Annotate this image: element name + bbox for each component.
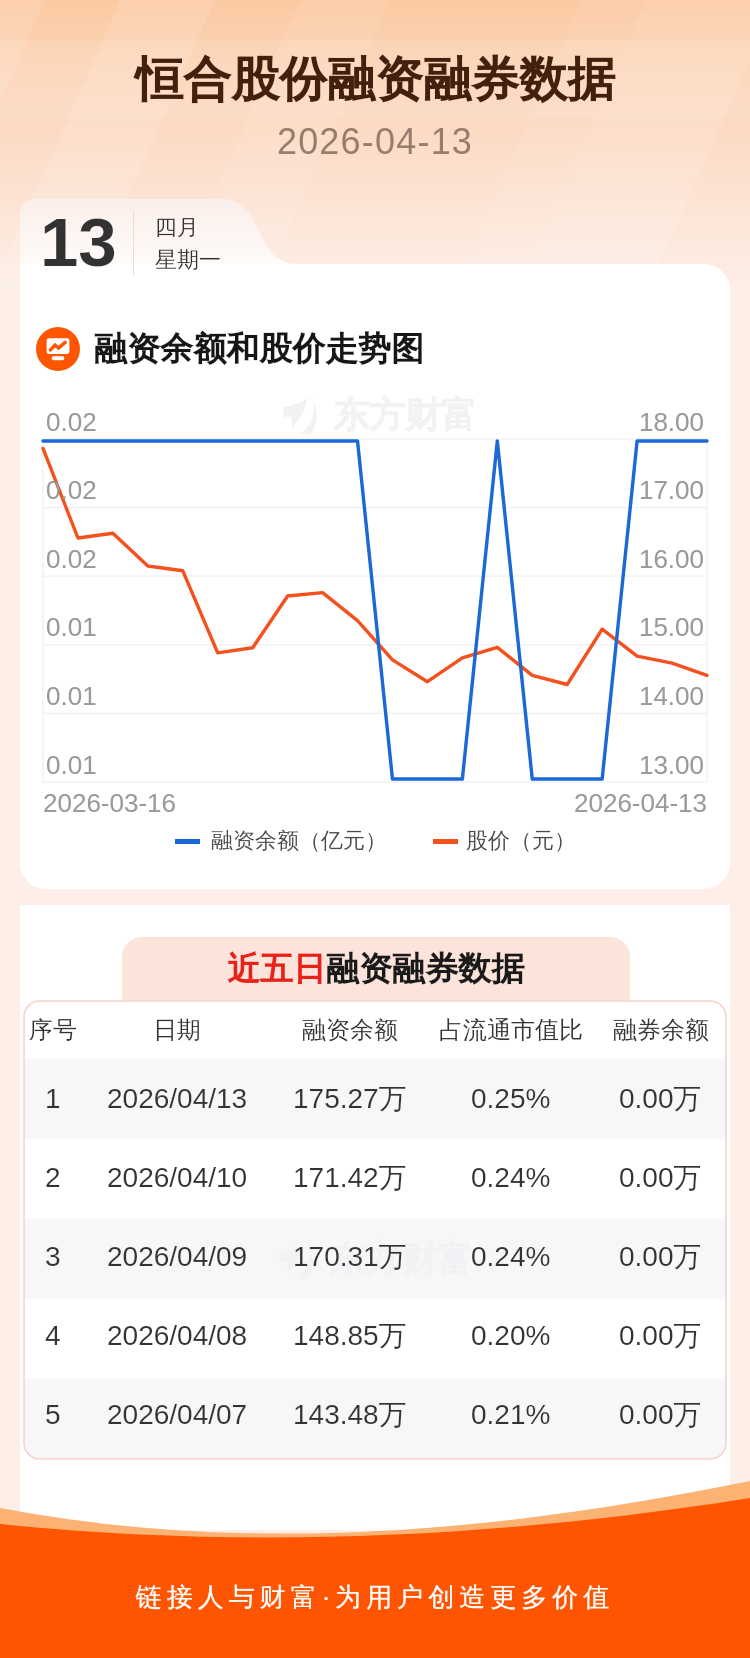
staticText: 链接人与财富·为用户创造更多价值 — [0, 1581, 750, 1614]
staticText: 0.00万 — [619, 1397, 702, 1432]
staticText: 5 — [45, 1399, 61, 1430]
staticText: 股价（元） — [466, 827, 576, 855]
staticText: 171.42万 — [293, 1160, 407, 1195]
staticText: 0.24% — [471, 1162, 551, 1193]
staticText: 融资余额 — [302, 1015, 398, 1045]
staticText: 0.24% — [471, 1241, 551, 1272]
staticText: 2026/04/10 — [107, 1162, 248, 1193]
staticText: 17.00 — [520, 475, 704, 504]
staticText: 东方财富 — [329, 1237, 473, 1282]
staticText: 1 — [45, 1083, 61, 1114]
staticText: 170.31万 — [293, 1239, 407, 1274]
staticText: 0.00万 — [619, 1081, 702, 1116]
button[interactable]: 4 — [24, 1296, 726, 1375]
staticText: 日期 — [153, 1015, 201, 1045]
staticText: 融券余额 — [613, 1015, 709, 1045]
staticText: 2026-03-16 — [43, 788, 176, 817]
staticText: 2026-04-13 — [520, 788, 707, 817]
button[interactable]: 5 — [24, 1375, 726, 1454]
staticText: 15.00 — [520, 612, 704, 641]
staticText: 0.01 — [46, 750, 97, 779]
other: Chart icon — [36, 327, 80, 371]
staticText: 148.85万 — [293, 1318, 407, 1353]
staticText: 13.00 — [520, 750, 704, 779]
staticText: 4 — [45, 1320, 61, 1351]
staticText: 0.02 — [46, 544, 97, 573]
staticText: 星期一 — [155, 246, 221, 274]
staticText: 融资余额和股价走势图 — [94, 328, 424, 370]
button[interactable]: 1 — [24, 1059, 726, 1138]
staticText: 18.00 — [520, 407, 704, 436]
staticText: 2026/04/13 — [107, 1083, 248, 1114]
staticText: 0.01 — [46, 681, 97, 710]
staticText: 0.02 — [46, 475, 97, 504]
staticText: 0.01 — [46, 612, 97, 641]
staticText: 143.48万 — [293, 1397, 407, 1432]
staticText: 近五日 — [227, 948, 326, 990]
staticText: 0.20% — [471, 1320, 551, 1351]
staticText: 融资融券数据 — [326, 948, 524, 990]
staticText: 序号 — [29, 1015, 77, 1045]
staticText: 东方财富 — [333, 392, 477, 437]
staticText: 0.00万 — [619, 1318, 702, 1353]
staticText: 0.02 — [46, 407, 97, 436]
button[interactable]: Chart icon — [36, 327, 424, 371]
staticText: 13 — [40, 204, 117, 281]
staticText: 16.00 — [520, 544, 704, 573]
staticText: 0.25% — [471, 1083, 551, 1114]
button[interactable]: 2 — [24, 1138, 726, 1217]
staticText: 14.00 — [520, 681, 704, 710]
staticText: 0.00万 — [619, 1239, 702, 1274]
staticText: 占流通市值比 — [439, 1015, 583, 1045]
staticText: 2026-04-13 — [0, 121, 750, 161]
staticText: 3 — [45, 1241, 61, 1272]
staticText: 175.27万 — [293, 1081, 407, 1116]
staticText: 恒合股份融资融券数据 — [0, 50, 750, 110]
staticText: 2 — [45, 1162, 61, 1193]
staticText: 2026/04/08 — [107, 1320, 248, 1351]
staticText: 融资余额（亿元） — [211, 827, 387, 855]
button[interactable]: 3 — [24, 1217, 726, 1296]
staticText: 2026/04/09 — [107, 1241, 248, 1272]
staticText: 0.21% — [471, 1399, 551, 1430]
staticText: 四月 — [155, 214, 199, 242]
staticText: 2026/04/07 — [107, 1399, 248, 1430]
staticText: 0.00万 — [619, 1160, 702, 1195]
